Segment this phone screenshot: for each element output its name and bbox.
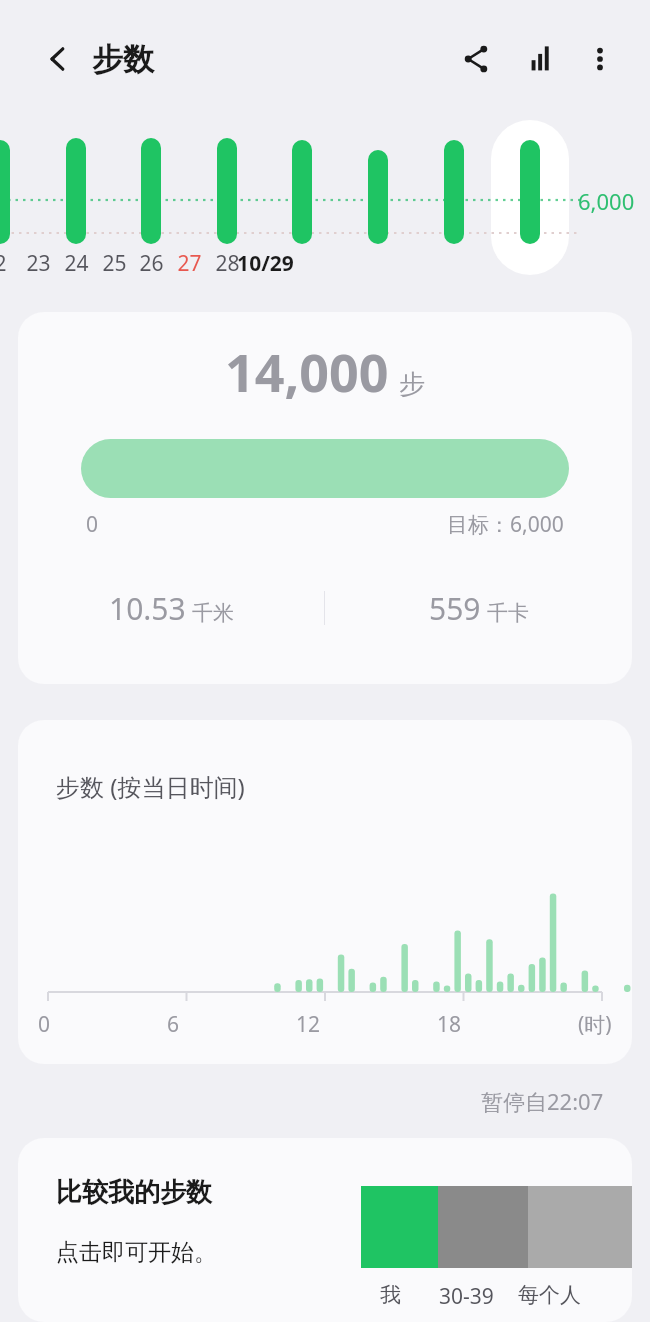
button[interactable]: 25 — [74, 249, 154, 278]
staticText: 千卡 — [487, 600, 529, 626]
button[interactable]: 2 — [0, 249, 40, 278]
button[interactable]: Back — [34, 35, 82, 83]
button[interactable]: 10/29 — [225, 249, 305, 278]
button[interactable]: Chart — [512, 31, 568, 87]
staticText: 28 — [215, 249, 240, 278]
button[interactable]: 23 — [0, 249, 78, 278]
staticText: 14,000 — [225, 336, 389, 407]
staticText: 0 — [86, 510, 99, 539]
staticText: 千米 — [192, 600, 234, 626]
button[interactable]: 27 — [149, 249, 229, 278]
staticText: 步数 — [92, 40, 154, 79]
staticText: 24 — [64, 249, 89, 278]
staticText: 我 — [380, 1282, 401, 1308]
staticText: 559 — [429, 588, 481, 629]
staticText: 点击即可开始。 — [56, 1238, 217, 1267]
button[interactable]: 24 — [36, 249, 116, 278]
staticText: 23 — [26, 249, 51, 278]
staticText: 比较我的步数 — [56, 1176, 212, 1209]
staticText: 26 — [139, 249, 164, 278]
button[interactable]: 步数 (按当日时间) — [18, 720, 632, 1064]
staticText: 暂停自22:07 — [481, 1086, 604, 1116]
button[interactable]: Share — [448, 31, 504, 87]
staticText: (时) — [578, 1010, 612, 1039]
staticText: 12 — [296, 1010, 321, 1039]
staticText: 每个人 — [518, 1282, 581, 1308]
staticText: 步数 (按当日时间) — [56, 770, 245, 803]
staticText: 18 — [437, 1010, 462, 1039]
button[interactable]: 26 — [111, 249, 191, 278]
staticText: 目标：6,000 — [447, 510, 564, 539]
staticText: 步 — [399, 368, 425, 401]
button[interactable]: 比较我的步数 — [18, 1138, 632, 1322]
button[interactable]: 28 — [187, 249, 267, 278]
staticText: 25 — [102, 249, 127, 278]
staticText: 6 — [167, 1010, 180, 1039]
staticText: 10/29 — [237, 249, 294, 278]
staticText: 0 — [38, 1010, 51, 1039]
staticText: 6,000 — [578, 186, 635, 216]
staticText: 2 — [0, 249, 7, 278]
staticText: 10.53 — [109, 588, 186, 629]
staticText: 27 — [177, 249, 202, 278]
staticText: 30-39 — [439, 1282, 494, 1311]
button[interactable]: 14,000 — [18, 312, 632, 684]
button[interactable]: More options — [572, 31, 628, 87]
